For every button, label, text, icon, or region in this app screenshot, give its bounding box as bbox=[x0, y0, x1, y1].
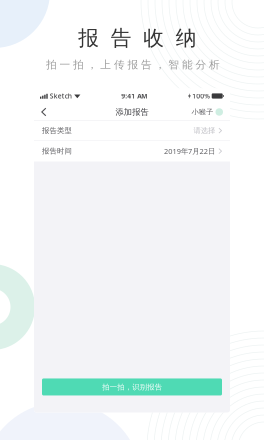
staticText: 小猴子 bbox=[191, 107, 213, 117]
button[interactable]: 小猴子 bbox=[184, 103, 230, 120]
staticText: 2019年7月22日 bbox=[164, 146, 215, 156]
staticText: 拍一拍，上传报告，智能分析 bbox=[46, 58, 220, 71]
staticText: 报告类型 bbox=[42, 126, 71, 135]
staticText: 请选择 bbox=[193, 126, 215, 135]
button[interactable]: 报告时间 bbox=[34, 141, 230, 161]
staticText: Sketch bbox=[50, 91, 72, 100]
staticText: 添加报告 bbox=[115, 107, 149, 117]
button[interactable]: Back bbox=[34, 103, 54, 120]
staticText: 拍一拍，识别报告 bbox=[102, 382, 162, 392]
button[interactable]: 报告类型 bbox=[34, 121, 230, 140]
staticText: 100% bbox=[192, 91, 210, 100]
staticText: 9:41 AM bbox=[121, 91, 147, 100]
button[interactable]: 拍一拍，识别报告 bbox=[42, 378, 222, 395]
staticText: 报告收纳 bbox=[78, 25, 197, 51]
staticText: 报告时间 bbox=[42, 146, 71, 156]
